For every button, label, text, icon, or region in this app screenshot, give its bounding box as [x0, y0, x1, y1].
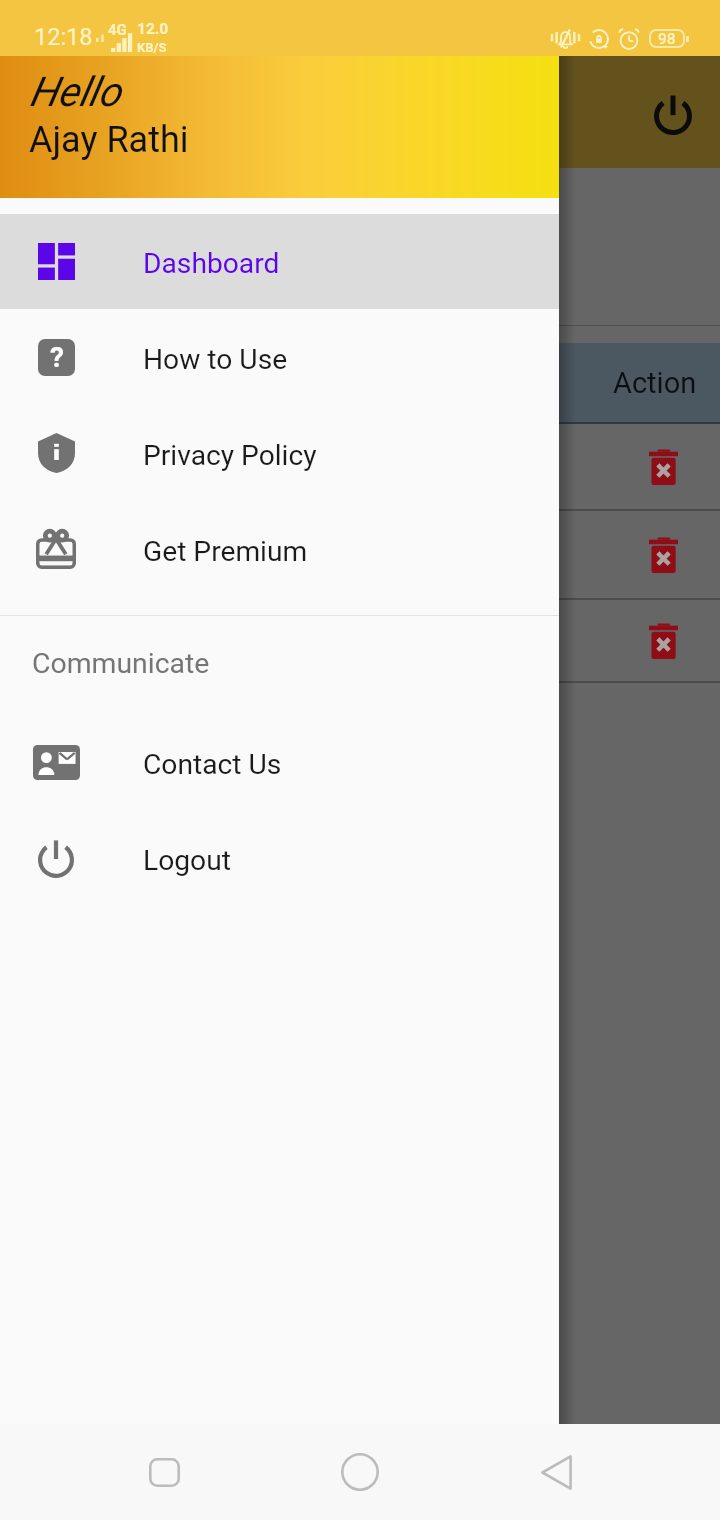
staticText: 12:18: [34, 23, 93, 51]
staticText: ?: [50, 341, 64, 374]
staticText: Logout: [143, 844, 231, 877]
staticText: Get Premium: [143, 535, 308, 568]
button[interactable]: Delete: [633, 437, 693, 497]
button[interactable]: Delete: [633, 525, 693, 585]
staticText: Dashboard: [143, 247, 280, 280]
button[interactable]: Recent apps: [128, 1436, 200, 1508]
button[interactable]: Privacy Policy: [0, 405, 559, 501]
staticText: Action: [613, 366, 697, 400]
button[interactable]: Logout: [0, 810, 559, 906]
staticText: 12.0: [137, 20, 169, 38]
button[interactable]: ?: [0, 309, 559, 405]
button[interactable]: Home: [324, 1436, 396, 1508]
button[interactable]: Contact Us: [0, 714, 559, 810]
staticText: KB/S: [137, 40, 167, 55]
button[interactable]: Get Premium: [0, 501, 559, 597]
staticText: Contact Us: [143, 748, 282, 781]
button[interactable]: Logout: [642, 83, 703, 144]
staticText: Ajay Rathi: [29, 119, 189, 161]
staticText: Hello: [29, 68, 121, 116]
staticText: Privacy Policy: [143, 439, 317, 472]
staticText: 4G: [108, 21, 127, 39]
button[interactable]: Delete: [633, 611, 693, 671]
button[interactable]: Dashboard: [0, 214, 559, 309]
staticText: Communicate: [32, 647, 210, 680]
staticText: How to Use: [143, 343, 288, 376]
button[interactable]: Back: [520, 1436, 592, 1508]
staticText: Name: [60, 366, 138, 400]
staticText: 98: [658, 30, 676, 48]
